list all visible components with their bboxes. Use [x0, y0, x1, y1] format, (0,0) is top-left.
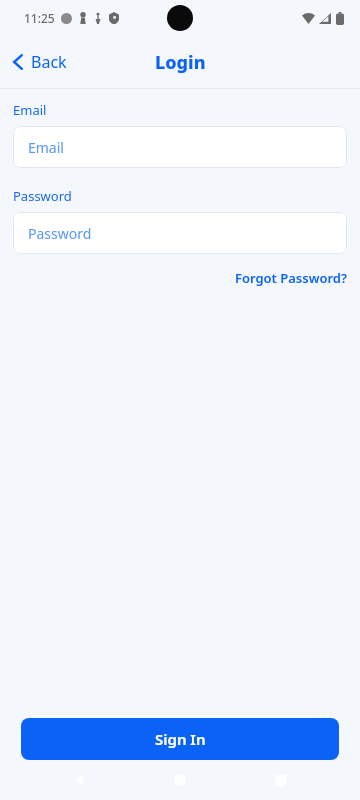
staticText: Email: [28, 138, 64, 157]
staticText: Email: [13, 101, 47, 119]
button[interactable]: Sign In: [21, 718, 339, 760]
button[interactable]: Email: [13, 126, 347, 168]
staticText: Password: [13, 187, 72, 205]
button[interactable]: Password: [13, 212, 347, 254]
staticText: Sign In: [155, 729, 206, 749]
button[interactable]: Forgot Password?: [234, 267, 347, 289]
staticText: Login: [155, 50, 206, 75]
staticText: 11:25: [24, 10, 55, 26]
staticText: Back: [31, 51, 67, 73]
staticText: Password: [28, 224, 92, 243]
button[interactable]: Back: [0, 43, 79, 81]
